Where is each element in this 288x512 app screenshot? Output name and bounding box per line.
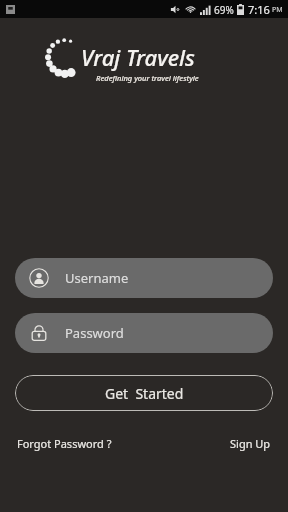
staticText: PM bbox=[272, 5, 283, 15]
staticText: Username bbox=[65, 269, 129, 287]
staticText: 7:16 bbox=[248, 2, 270, 17]
button[interactable]: Sign Up bbox=[228, 433, 273, 454]
staticText: Get Started bbox=[105, 384, 184, 403]
button[interactable]: Get Started bbox=[15, 375, 273, 411]
staticText: Sign Up bbox=[230, 436, 271, 451]
staticText: Vraj Travels bbox=[81, 42, 195, 72]
staticText: Password bbox=[65, 324, 124, 342]
staticText: Forgot Password ? bbox=[17, 436, 112, 451]
staticText: Redefining your travel lifestyle bbox=[96, 73, 199, 83]
staticText: 69% bbox=[214, 3, 234, 17]
button[interactable]: Forgot Password ? bbox=[15, 433, 114, 454]
button[interactable]: Password bbox=[15, 313, 273, 353]
button[interactable]: Username bbox=[15, 258, 273, 298]
